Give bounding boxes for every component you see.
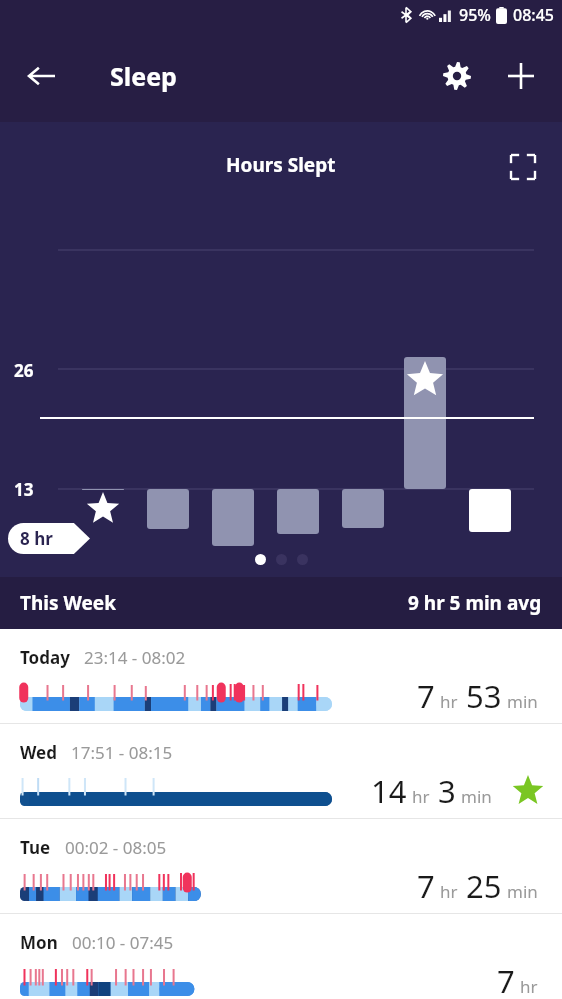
staticText: 7 [497, 960, 515, 999]
staticText: hr [412, 785, 430, 808]
staticText: 26 [14, 359, 34, 382]
staticText: S [163, 619, 173, 644]
staticText: min [507, 690, 538, 713]
staticText: 3 [438, 770, 456, 812]
staticText: 9 hr 5 min avg [408, 590, 542, 616]
staticText: S [228, 619, 238, 644]
staticText: W [416, 619, 434, 644]
staticText: 7 [417, 675, 435, 717]
staticText: Wed [20, 741, 57, 764]
staticText: This Week [20, 590, 116, 616]
button[interactable]: Back [14, 48, 70, 104]
staticText: T [358, 619, 369, 644]
staticText: 53 [466, 675, 502, 717]
staticText: Hours Slept [226, 152, 336, 178]
button[interactable]: Today [0, 629, 562, 724]
staticText: 13 [14, 478, 34, 501]
staticText: 25 [466, 865, 502, 907]
staticText: 8 hr [20, 527, 53, 550]
staticText: F [98, 619, 108, 644]
staticText: Tue [20, 836, 51, 859]
staticText: 7 [417, 865, 435, 907]
staticText: Today [20, 646, 70, 669]
staticText: 00:10 - 07:45 [72, 931, 174, 954]
staticText: min [461, 785, 492, 808]
button[interactable]: Tue [0, 819, 562, 914]
staticText: 08:45 [513, 4, 554, 26]
staticText: 0 [26, 598, 36, 621]
button[interactable]: Add [494, 49, 548, 103]
staticText: 14 [371, 770, 407, 812]
staticText: hr [520, 975, 538, 998]
button[interactable]: Fullscreen [500, 144, 546, 190]
staticText: 00:02 - 08:05 [65, 836, 167, 859]
staticText: 17:51 - 08:15 [71, 741, 173, 764]
staticText: Sleep [110, 59, 177, 93]
staticText: hr [440, 690, 458, 713]
staticText: 95% [459, 4, 491, 26]
staticText: 23:14 - 08:02 [84, 646, 186, 669]
staticText: Mon [20, 931, 58, 954]
button[interactable]: This Week [0, 577, 562, 629]
staticText: min [507, 880, 538, 903]
staticText: T [485, 622, 496, 647]
staticText: hr [440, 880, 458, 903]
button[interactable]: Settings [430, 49, 484, 103]
button[interactable]: Wed [0, 724, 562, 819]
staticText: M [290, 619, 307, 644]
button[interactable]: Mon [0, 914, 562, 999]
